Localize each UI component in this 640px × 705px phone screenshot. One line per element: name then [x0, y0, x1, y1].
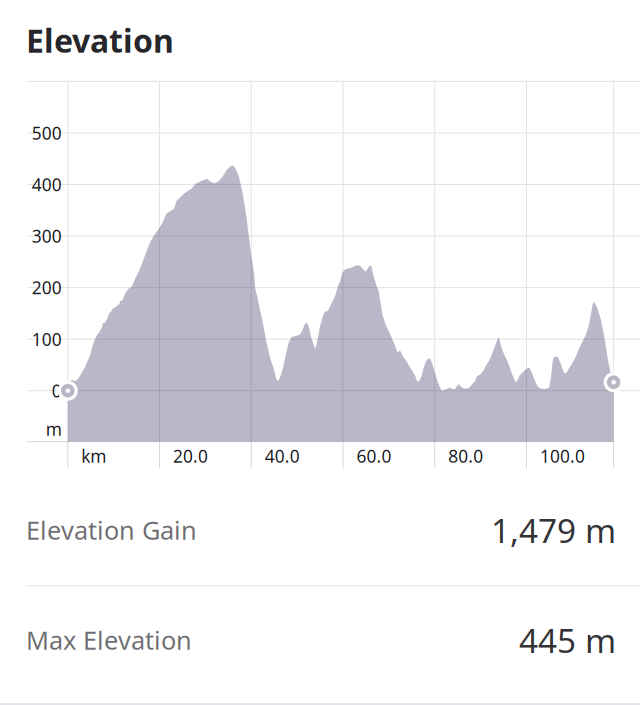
staticText: m — [46, 417, 62, 440]
staticText: Elevation — [26, 19, 174, 61]
staticText: 100 — [32, 328, 62, 351]
staticText: 300 — [32, 224, 62, 247]
button[interactable]: Elevation Gain — [0, 483, 640, 577]
button[interactable]: Max Elevation — [0, 593, 640, 687]
staticText: 100.0 — [540, 444, 585, 467]
staticText: 1,479 m — [491, 508, 616, 552]
staticText: 20.0 — [173, 444, 208, 467]
staticText: 0 — [52, 379, 62, 402]
staticText: Max Elevation — [26, 623, 192, 657]
staticText: 60.0 — [356, 444, 391, 467]
staticText: 200 — [32, 276, 62, 299]
staticText: 500 — [32, 121, 62, 144]
staticText: km — [81, 444, 106, 467]
staticText: Elevation Gain — [26, 513, 197, 547]
staticText: 400 — [32, 173, 62, 196]
staticText: 80.0 — [448, 444, 483, 467]
staticText: 40.0 — [265, 444, 300, 467]
staticText: 445 m — [519, 618, 616, 662]
